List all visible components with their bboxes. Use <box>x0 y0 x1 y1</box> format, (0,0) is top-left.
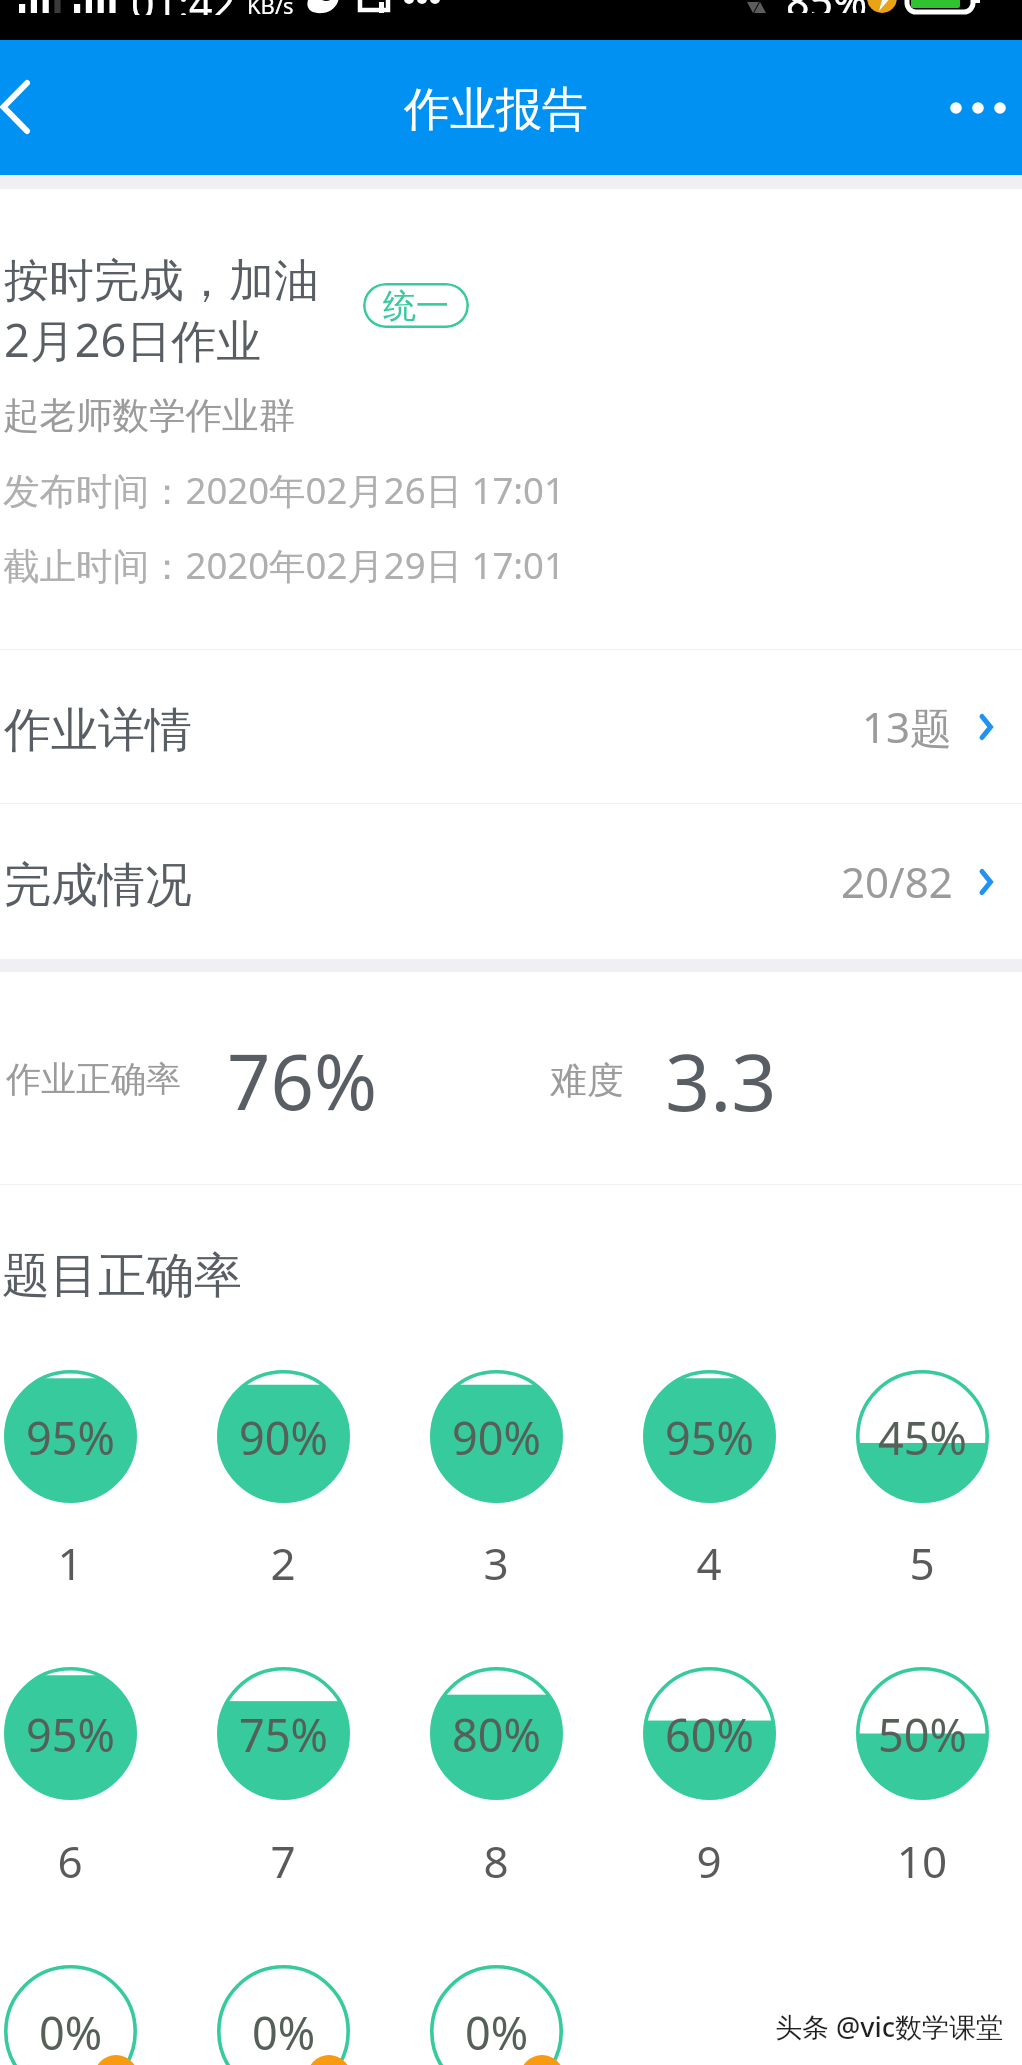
staticText: 95% <box>665 1407 754 1468</box>
button[interactable]: 完成情况 <box>0 804 1022 959</box>
staticText: 76% <box>227 1029 378 1133</box>
staticText: 95% <box>26 1704 115 1765</box>
button[interactable]: Question 2 correct rate 90 percent <box>217 1370 350 1503</box>
staticText: 截止时间：2020年02月29日 17:01 <box>3 540 565 590</box>
staticText: 50% <box>878 1704 967 1765</box>
staticText: 8 <box>456 1831 536 1891</box>
staticText: 作业报告 <box>404 81 588 139</box>
staticText: 3 <box>456 1533 536 1593</box>
staticText: 10 <box>882 1831 962 1891</box>
button[interactable]: More options <box>912 40 1022 175</box>
button[interactable]: Question 1 correct rate 95 percent <box>4 1370 137 1503</box>
button[interactable]: Question 12 correct rate 0 percent <box>217 1965 350 2065</box>
button[interactable]: Question 10 correct rate 50 percent <box>856 1667 989 1800</box>
button[interactable]: Question 13 correct rate 0 percent <box>430 1965 563 2065</box>
staticText: 60% <box>665 1704 754 1765</box>
staticText: 1 <box>30 1533 110 1593</box>
button[interactable]: Question 5 correct rate 45 percent <box>856 1370 989 1503</box>
staticText: 20/82 <box>841 853 953 910</box>
button[interactable]: Question 6 correct rate 95 percent <box>4 1667 137 1800</box>
button[interactable]: Question 9 correct rate 60 percent <box>643 1667 776 1800</box>
staticText: 90% <box>239 1407 328 1468</box>
button[interactable]: Question 11 correct rate 0 percent <box>4 1965 137 2065</box>
staticText: 难度 <box>550 1057 624 1104</box>
staticText: 作业正确率 <box>6 1057 181 1101</box>
staticText: 0% <box>39 2002 103 2063</box>
staticText: 2 <box>243 1533 323 1593</box>
staticText: KB/s <box>247 0 294 20</box>
button[interactable]: 统一 <box>363 283 469 328</box>
button[interactable]: Question 7 correct rate 75 percent <box>217 1667 350 1800</box>
staticText: 45% <box>878 1407 967 1468</box>
staticText: 完成情况 <box>4 856 192 915</box>
staticText: 起老师数学作业群 <box>3 393 295 439</box>
staticText: 80% <box>452 1704 541 1765</box>
staticText: 90% <box>452 1407 541 1468</box>
staticText: 头条 @vic数学课堂 <box>775 2008 1004 2045</box>
staticText: 作业详情 <box>4 701 192 760</box>
staticText: 01:42 <box>131 0 236 15</box>
staticText: 发布时间：2020年02月26日 17:01 <box>3 465 565 515</box>
staticText: 5 <box>882 1533 962 1593</box>
staticText: 按时完成，加油 <box>4 253 319 310</box>
button[interactable]: Question 3 correct rate 90 percent <box>430 1370 563 1503</box>
staticText: 4 <box>669 1533 749 1593</box>
staticText: 0% <box>465 2002 529 2063</box>
staticText: 0% <box>252 2002 316 2063</box>
staticText: 7 <box>243 1831 323 1891</box>
staticText: 统一 <box>383 285 449 327</box>
button[interactable]: Question 8 correct rate 80 percent <box>430 1667 563 1800</box>
staticText: 85% <box>786 0 867 13</box>
staticText: 9 <box>669 1831 749 1891</box>
button[interactable]: Back <box>0 40 72 175</box>
staticText: 13题 <box>862 698 953 755</box>
staticText: 95% <box>26 1407 115 1468</box>
staticText: 3.3 <box>665 1027 777 1135</box>
staticText: 75% <box>239 1704 328 1765</box>
button[interactable]: 作业详情 <box>0 650 1022 803</box>
staticText: 6 <box>30 1831 110 1891</box>
staticText: 2月26日作业 <box>4 309 262 370</box>
button[interactable]: Question 4 correct rate 95 percent <box>643 1370 776 1503</box>
staticText: 题目正确率 <box>2 1246 242 1306</box>
